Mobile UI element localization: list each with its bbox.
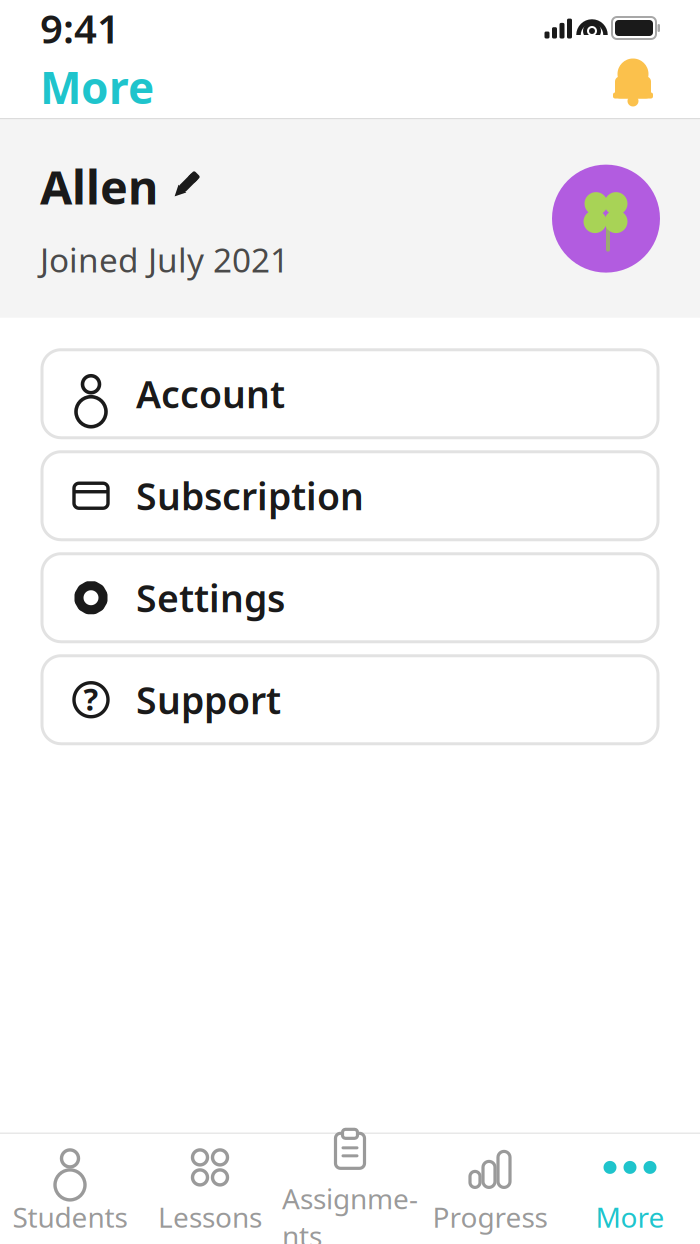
button[interactable]: Lessons xyxy=(140,1152,280,1230)
staticText: ? xyxy=(83,678,98,719)
button[interactable]: ? xyxy=(42,656,658,744)
button[interactable]: Progress xyxy=(420,1152,560,1230)
staticText: More xyxy=(40,58,154,116)
button[interactable]: Profile picture xyxy=(552,165,660,273)
staticText: Settings xyxy=(136,573,285,622)
staticText: Students xyxy=(12,1198,127,1236)
button[interactable]: Subscription xyxy=(42,452,658,540)
staticText: Lessons xyxy=(158,1198,262,1236)
button[interactable]: Allen xyxy=(40,155,197,217)
staticText: Subscription xyxy=(136,471,364,520)
staticText: Assignments xyxy=(282,1180,418,1244)
staticText: Allen xyxy=(40,155,158,217)
button[interactable]: Account xyxy=(42,350,658,438)
button[interactable]: Notifications xyxy=(606,60,660,114)
button[interactable]: More xyxy=(560,1152,700,1230)
staticText: Account xyxy=(136,369,285,418)
staticText: 9:41 xyxy=(40,1,120,54)
staticText: More xyxy=(595,1198,664,1236)
staticText: Joined July 2021 xyxy=(40,237,289,282)
button[interactable]: Assignments xyxy=(280,1152,420,1230)
button[interactable]: Settings xyxy=(42,554,658,642)
staticText: Support xyxy=(136,675,281,724)
button[interactable]: Students xyxy=(0,1152,140,1230)
staticText: Progress xyxy=(432,1198,547,1236)
